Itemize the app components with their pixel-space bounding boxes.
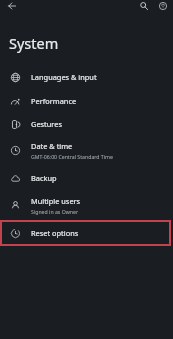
staticText: Reset options bbox=[31, 228, 79, 238]
staticText: System bbox=[9, 33, 59, 53]
staticText: Backup bbox=[31, 173, 57, 183]
button[interactable]: Gestures bbox=[0, 112, 173, 136]
staticText: Signed in as Owner bbox=[31, 208, 79, 215]
staticText: Gestures bbox=[31, 119, 62, 129]
staticText: Date & time bbox=[31, 141, 73, 151]
button[interactable]: Search bbox=[136, 0, 151, 13]
button[interactable]: Backup bbox=[0, 166, 173, 190]
staticText: Multiple users bbox=[31, 196, 81, 206]
button[interactable]: Languages & input bbox=[0, 65, 173, 89]
button[interactable]: Back bbox=[4, 0, 19, 13]
button[interactable]: Help bbox=[155, 0, 170, 13]
staticText: Languages & input bbox=[31, 72, 97, 82]
button[interactable]: Reset options bbox=[0, 221, 173, 245]
button[interactable]: Performance bbox=[0, 89, 173, 113]
button[interactable]: Date & time bbox=[0, 137, 173, 163]
staticText: GMT-06:00 Central Standard Time bbox=[31, 153, 113, 160]
staticText: Performance bbox=[31, 96, 77, 106]
button[interactable]: Multiple users bbox=[0, 192, 173, 218]
